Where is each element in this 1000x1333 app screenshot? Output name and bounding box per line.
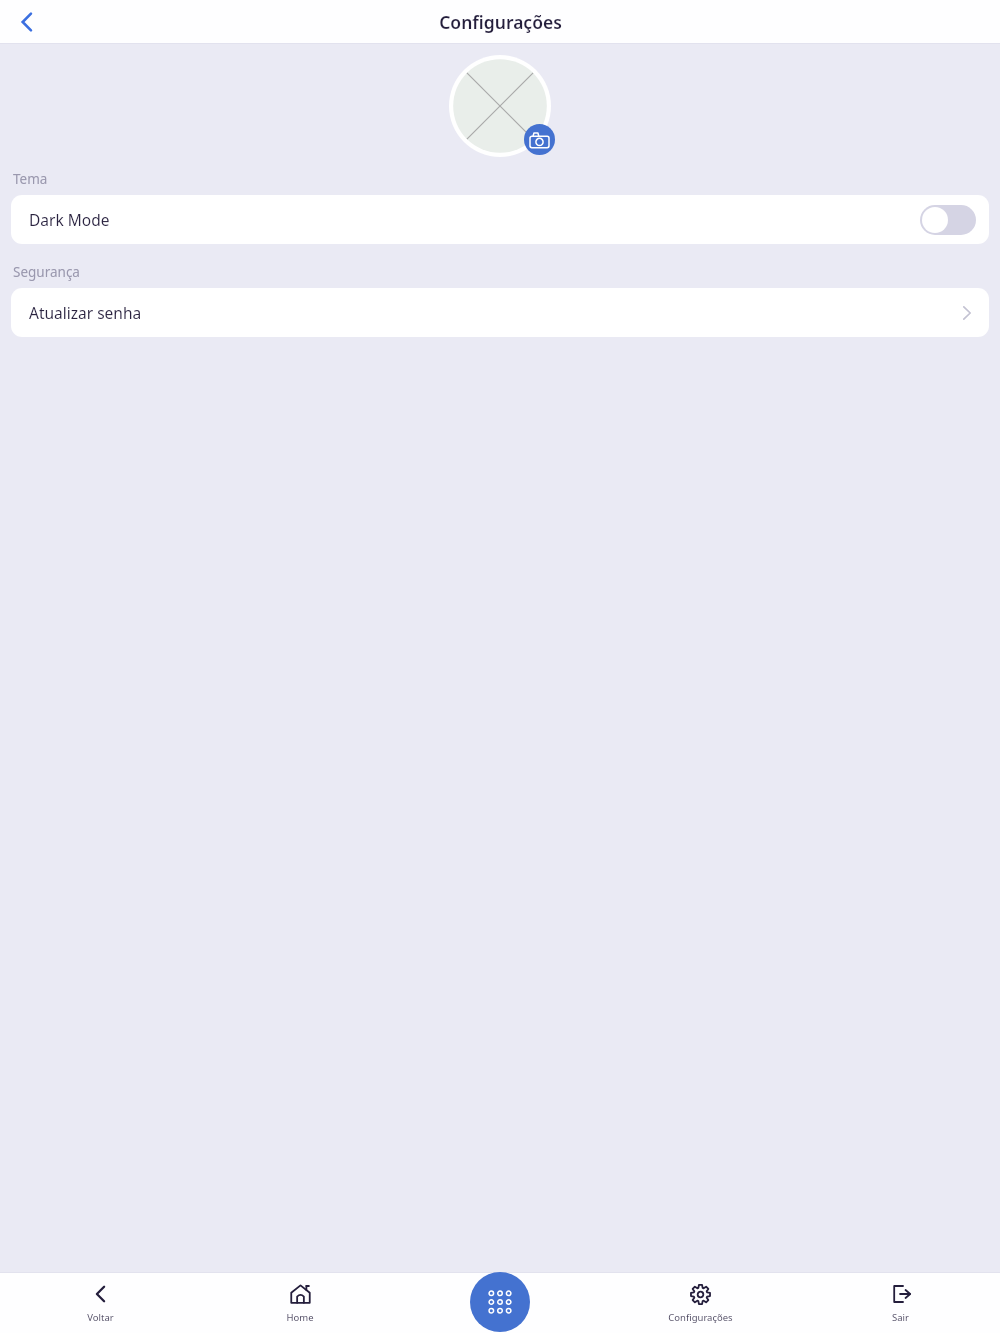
button[interactable]: Change profile photo: [449, 55, 551, 157]
button[interactable]: Configurações: [600, 1276, 800, 1330]
staticText: Atualizar senha: [29, 302, 142, 323]
staticText: Segurança: [13, 263, 80, 281]
button[interactable]: Back: [0, 0, 54, 44]
staticText: Voltar: [87, 1311, 114, 1324]
staticText: Home: [286, 1311, 314, 1324]
button[interactable]: Dark Mode toggle: [920, 205, 976, 235]
button[interactable]: Home: [200, 1276, 400, 1330]
button[interactable]: Atualizar senha: [11, 288, 989, 337]
staticText: Tema: [13, 170, 48, 188]
staticText: Configurações: [668, 1311, 733, 1324]
staticText: Sair: [892, 1311, 909, 1324]
staticText: Configurações: [439, 10, 562, 34]
button[interactable]: Menu: [470, 1272, 530, 1332]
button[interactable]: Voltar: [0, 1276, 200, 1330]
button[interactable]: Take photo: [524, 124, 555, 155]
staticText: Dark Mode: [29, 209, 110, 230]
button[interactable]: Dark Mode: [11, 195, 989, 244]
button[interactable]: Sair: [800, 1276, 1000, 1330]
